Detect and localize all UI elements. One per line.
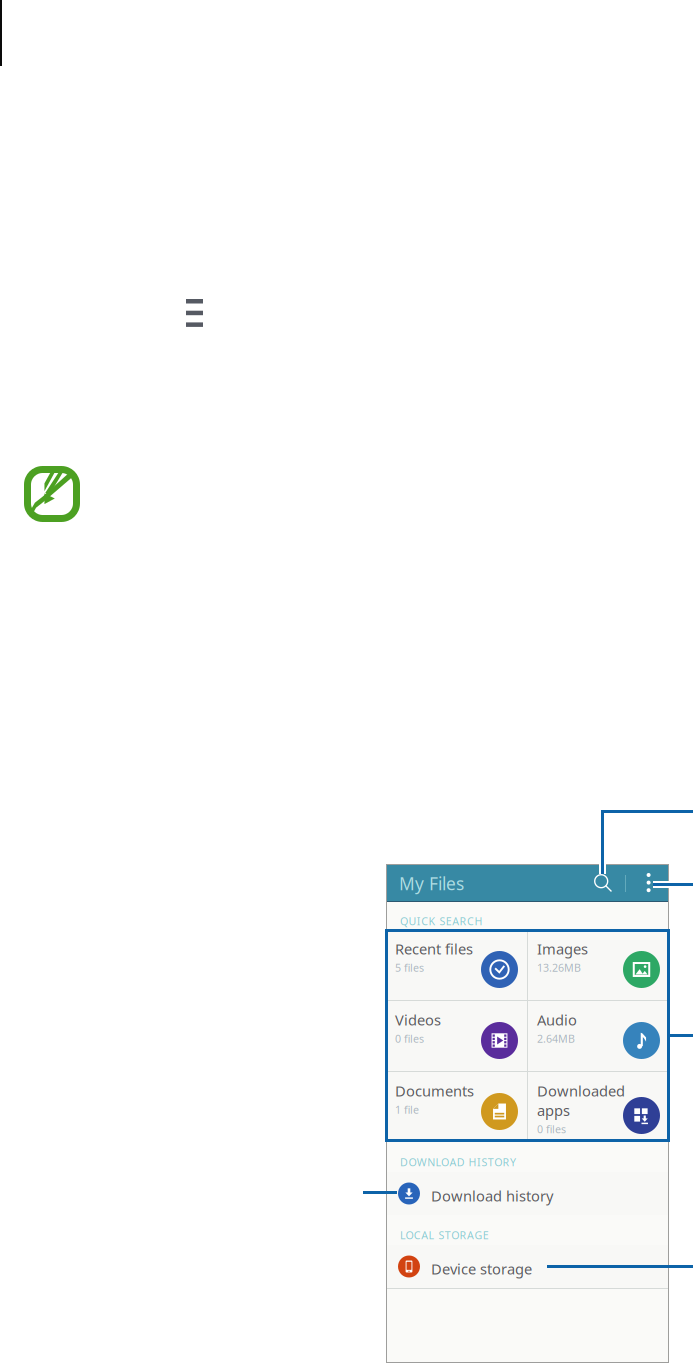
staticText: Download history [431, 1186, 553, 1205]
button[interactable]: Device storage [386, 1245, 669, 1288]
staticText: Videos [395, 1010, 441, 1029]
button[interactable]: Search [586, 864, 622, 902]
staticText: Audio [537, 1010, 577, 1029]
staticText: Recent files [395, 939, 473, 958]
staticText: My Files [399, 872, 464, 895]
button[interactable]: Documents [386, 1072, 527, 1142]
staticText: LOCAL STORAGE [400, 1228, 489, 1242]
button[interactable]: Downloaded apps [528, 1072, 669, 1142]
button[interactable]: Download history [386, 1172, 669, 1215]
button[interactable]: Audio [528, 1001, 669, 1071]
button[interactable]: Menu [186, 299, 203, 327]
button[interactable]: More options [635, 864, 665, 902]
staticText: 0 files [537, 1122, 566, 1136]
button[interactable]: Recent files [386, 930, 527, 1000]
staticText: 13.26MB [537, 960, 581, 975]
staticText: Images [537, 939, 588, 958]
staticText: QUICK SEARCH [400, 914, 482, 928]
staticText: Downloaded apps [537, 1081, 625, 1120]
staticText: 2.64MB [537, 1031, 575, 1046]
staticText: DOWNLOAD HISTORY [400, 1155, 516, 1169]
staticText: Documents [395, 1081, 474, 1100]
staticText: Device storage [431, 1259, 532, 1278]
staticText: 5 files [395, 960, 424, 975]
button[interactable]: Images [528, 930, 669, 1000]
staticText: 0 files [395, 1031, 424, 1046]
staticText: 1 file [395, 1102, 419, 1117]
button[interactable]: Videos [386, 1001, 527, 1071]
